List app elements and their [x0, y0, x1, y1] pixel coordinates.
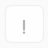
button[interactable]: Warning: [5, 5, 43, 42]
